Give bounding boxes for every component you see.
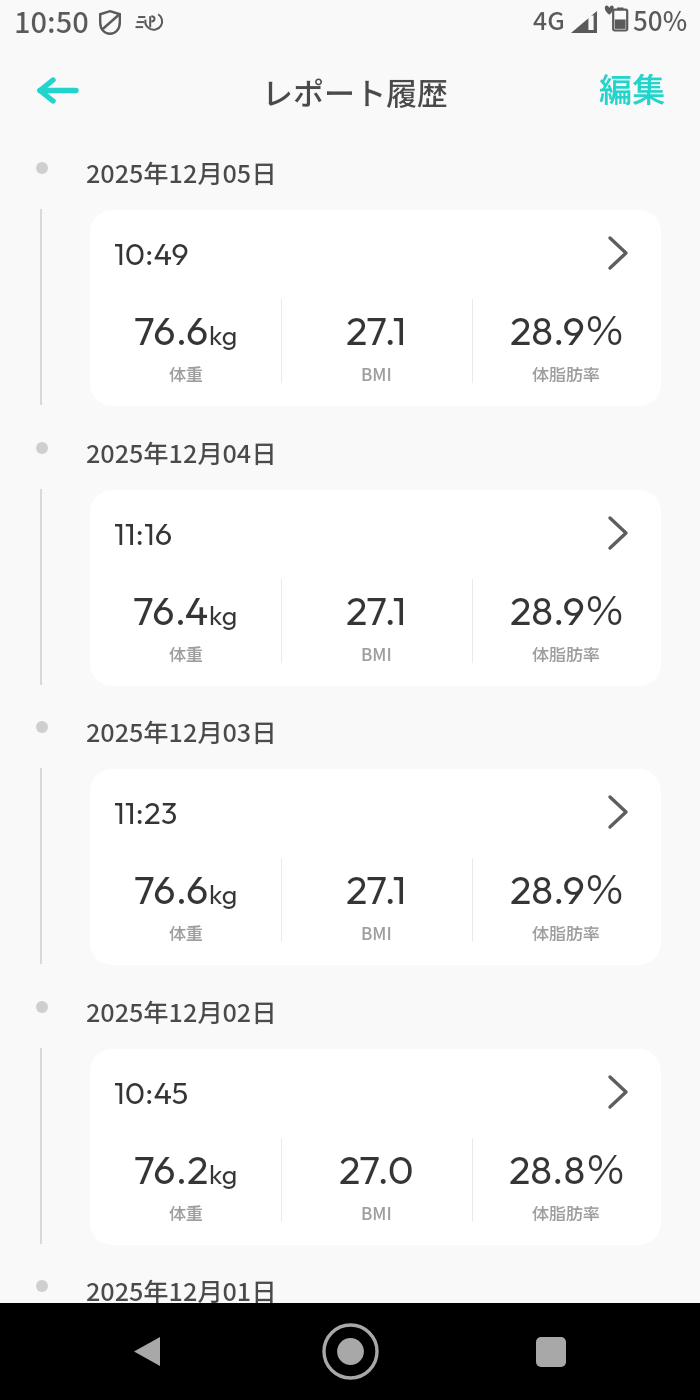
staticText: 体脂肪率 (532, 361, 600, 386)
staticText: 10:30 (114, 1352, 191, 1391)
staticText: 28.9 (510, 305, 585, 347)
button[interactable]: Open detail (608, 516, 628, 550)
staticText: 28.8 (509, 1144, 586, 1186)
staticText: 50% (633, 1, 688, 39)
staticText: 2025年12月03日 (86, 713, 277, 749)
staticText: BMI (361, 361, 392, 386)
staticText: 27.1 (346, 585, 407, 627)
staticText: % (586, 589, 624, 631)
staticText: 10:49 (114, 234, 189, 273)
staticText: kg (209, 318, 238, 352)
staticText: 2025年12月02日 (86, 993, 277, 1029)
button[interactable]: Recent apps (509, 1303, 593, 1400)
staticText: 28.9 (510, 864, 585, 906)
button[interactable]: Home (308, 1303, 392, 1400)
staticText: kg (209, 877, 238, 911)
staticText: % (586, 868, 624, 910)
staticText: 27.1 (346, 305, 407, 347)
staticText: 76.6 (134, 864, 209, 906)
staticText: 2025年12月04日 (86, 434, 277, 470)
staticText: kg (209, 1157, 238, 1191)
staticText: % (587, 1148, 625, 1190)
staticText: 体重 (169, 920, 203, 945)
staticText: kg (209, 598, 238, 632)
button[interactable]: 10:49 (90, 210, 661, 406)
staticText: BMI (361, 920, 392, 945)
staticText: 2025年12月05日 (86, 154, 277, 190)
staticText: 10:50 (14, 0, 89, 41)
button[interactable]: 11:16 (90, 490, 661, 686)
button[interactable]: 10:45 (90, 1049, 661, 1245)
button[interactable]: 10:30 (90, 1328, 661, 1400)
staticText: 体脂肪率 (532, 920, 600, 945)
staticText: % (586, 309, 624, 351)
staticText: 27.1 (346, 864, 407, 906)
button[interactable]: Open detail (608, 795, 628, 829)
staticText: 体重 (169, 361, 203, 386)
button[interactable]: Open detail (608, 236, 628, 270)
staticText: 10:45 (114, 1073, 189, 1112)
staticText: レポート履歴 (262, 69, 448, 114)
button[interactable]: Open detail (608, 1075, 628, 1109)
staticText: 体脂肪率 (532, 641, 600, 666)
staticText: 76.6 (134, 305, 209, 347)
staticText: BMI (361, 1200, 392, 1225)
staticText: 編集 (599, 64, 665, 112)
staticText: 27.0 (339, 1144, 414, 1186)
staticText: 76.4 (133, 585, 209, 627)
staticText: 11:16 (114, 514, 173, 553)
staticText: 体重 (169, 1200, 203, 1225)
staticText: 11:23 (114, 793, 178, 832)
staticText: 76.2 (134, 1144, 209, 1186)
staticText: 体脂肪率 (532, 1200, 600, 1225)
button[interactable]: Back (28, 61, 86, 119)
button[interactable]: Back (104, 1303, 188, 1400)
staticText: 体重 (169, 641, 203, 666)
staticText: 28.9 (510, 585, 585, 627)
button[interactable]: 編集 (599, 64, 665, 112)
staticText: 2025年12月01日 (86, 1272, 277, 1308)
staticText: BMI (361, 641, 392, 666)
staticText: 4G (533, 1, 565, 37)
button[interactable]: 11:23 (90, 769, 661, 965)
